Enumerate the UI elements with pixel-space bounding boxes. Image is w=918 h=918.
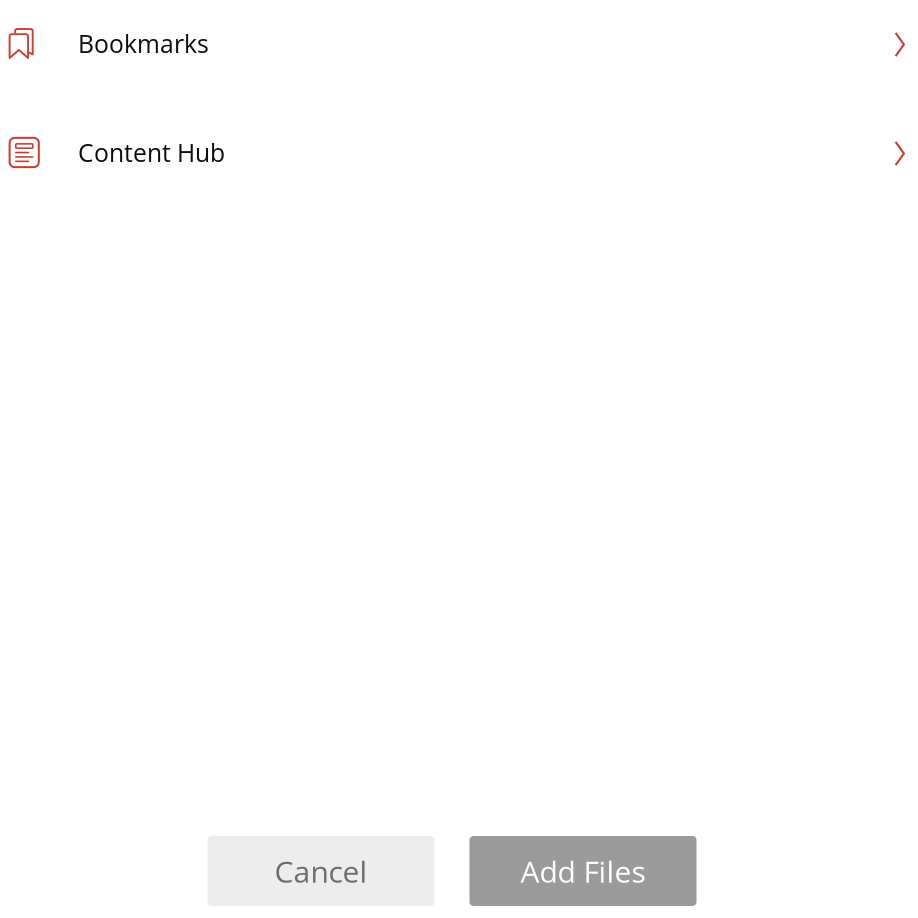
staticText: Content Hub — [78, 136, 225, 169]
button[interactable]: Cancel — [207, 836, 434, 906]
button[interactable]: Content Hub — [0, 87, 918, 218]
staticText: Bookmarks — [78, 27, 209, 60]
staticText: Cancel — [274, 851, 367, 891]
button[interactable]: Add Files — [469, 836, 696, 906]
staticText: Add Files — [520, 851, 645, 891]
button[interactable]: Bookmarks — [0, 0, 918, 87]
